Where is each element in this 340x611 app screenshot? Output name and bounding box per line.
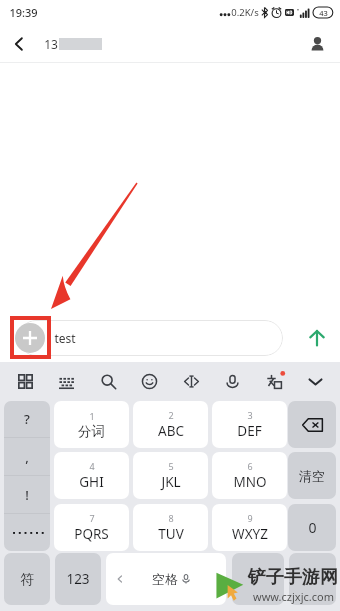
button[interactable]: Add attachment bbox=[15, 323, 45, 353]
staticText: 5 bbox=[168, 460, 174, 472]
staticText: 4 bbox=[89, 460, 95, 472]
staticText: , bbox=[25, 448, 29, 466]
staticText: 铲子手游网 bbox=[248, 566, 338, 589]
button[interactable]: test bbox=[18, 320, 283, 356]
button[interactable]: Hide keyboard bbox=[298, 364, 332, 398]
button[interactable]: Enter bbox=[289, 553, 336, 605]
button[interactable]: 清空 bbox=[288, 452, 336, 499]
button[interactable]: 符 bbox=[4, 553, 50, 605]
button[interactable]: ! bbox=[4, 476, 50, 513]
button[interactable]: Emoji bbox=[132, 364, 166, 398]
staticText: ? bbox=[24, 410, 30, 428]
staticText: ABC bbox=[158, 422, 184, 440]
button[interactable]: 4 bbox=[54, 452, 129, 499]
button[interactable]: Search bbox=[91, 364, 125, 398]
button[interactable]: , bbox=[4, 438, 50, 475]
button[interactable]: Translate bbox=[257, 364, 291, 398]
staticText: www.czjxjc.com bbox=[253, 589, 334, 604]
staticText: 43 bbox=[319, 8, 328, 18]
staticText: WXYZ bbox=[232, 525, 268, 543]
button[interactable]: Back bbox=[0, 25, 38, 63]
button[interactable]: Backspace bbox=[288, 401, 336, 448]
staticText: 8 bbox=[168, 512, 174, 524]
staticText: test bbox=[54, 330, 76, 346]
staticText: 1 bbox=[89, 410, 95, 422]
staticText: 19:39 bbox=[9, 5, 38, 20]
staticText: PQRS bbox=[74, 525, 109, 543]
button[interactable]: 5 bbox=[133, 452, 208, 499]
staticText: TUV bbox=[158, 525, 184, 543]
button[interactable]: 空格 bbox=[106, 553, 226, 605]
button[interactable]: 2 bbox=[133, 401, 208, 448]
button[interactable]: 6 bbox=[212, 452, 287, 499]
staticText: 空格 bbox=[152, 571, 178, 587]
staticText: 9 bbox=[247, 512, 253, 524]
staticText: 符 bbox=[20, 571, 34, 588]
button[interactable]: Voice input bbox=[215, 364, 249, 398]
button[interactable]: Ellipsis bbox=[4, 514, 50, 551]
button[interactable]: 1 bbox=[54, 401, 129, 448]
staticText: 2 bbox=[168, 409, 174, 421]
staticText: 7 bbox=[89, 512, 95, 524]
staticText: 0 bbox=[308, 518, 317, 537]
staticText: 3 bbox=[247, 409, 253, 421]
staticText: GHI bbox=[79, 473, 104, 491]
staticText: ! bbox=[25, 486, 29, 504]
staticText: DEF bbox=[237, 422, 262, 440]
staticText: 分词 bbox=[78, 423, 105, 440]
staticText: 6 bbox=[247, 460, 253, 472]
button[interactable]: 3 bbox=[212, 401, 287, 448]
staticText: 13 bbox=[44, 36, 58, 52]
button[interactable]: 123 bbox=[55, 553, 101, 605]
button[interactable]: Keyboard layout bbox=[49, 364, 83, 398]
button[interactable]: Contact profile bbox=[300, 27, 334, 61]
button[interactable]: Clipboard bbox=[174, 364, 208, 398]
staticText: 0.2K/s bbox=[231, 6, 259, 19]
button[interactable]: ? bbox=[4, 401, 50, 437]
staticText: 清空 bbox=[299, 468, 325, 484]
staticText: JKL bbox=[161, 473, 181, 491]
button[interactable]: 0 bbox=[288, 504, 336, 551]
button[interactable]: Send bbox=[303, 324, 331, 352]
button[interactable]: 9 bbox=[212, 504, 287, 551]
button[interactable]: 7 bbox=[54, 504, 129, 551]
button[interactable]: Punctuation bbox=[232, 553, 284, 605]
staticText: MNO bbox=[233, 473, 267, 491]
button[interactable]: Apps bbox=[8, 364, 42, 398]
button[interactable]: 8 bbox=[133, 504, 208, 551]
staticText: 123 bbox=[66, 570, 90, 588]
